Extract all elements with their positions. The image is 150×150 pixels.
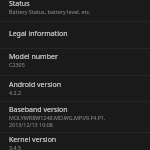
staticText: Android version bbox=[9, 80, 62, 89]
button[interactable]: Model number bbox=[0, 49, 150, 75]
staticText: Status bbox=[9, 0, 30, 8]
staticText: Kernel version bbox=[9, 135, 57, 144]
staticText: MOLYWR8W1248.MD.WG.MP.V9.F4.P1, bbox=[9, 114, 106, 121]
button[interactable]: Android version bbox=[0, 76, 150, 101]
button[interactable]: Legal information bbox=[0, 22, 150, 48]
staticText: 2013/12/13 10:08 bbox=[9, 121, 53, 128]
staticText: Baseband version bbox=[9, 105, 68, 114]
staticText: C2305 bbox=[9, 61, 25, 68]
staticText: 3.4.5 bbox=[9, 144, 22, 150]
button[interactable]: Status bbox=[0, 0, 150, 21]
staticText: Model number bbox=[9, 52, 58, 61]
staticText: 4.2.2 bbox=[9, 89, 22, 96]
staticText: Legal information bbox=[9, 29, 68, 38]
button[interactable]: Baseband version bbox=[0, 102, 150, 132]
staticText: Battery Status, battery level, etc. bbox=[9, 8, 91, 15]
button[interactable]: Kernel version bbox=[0, 133, 150, 150]
